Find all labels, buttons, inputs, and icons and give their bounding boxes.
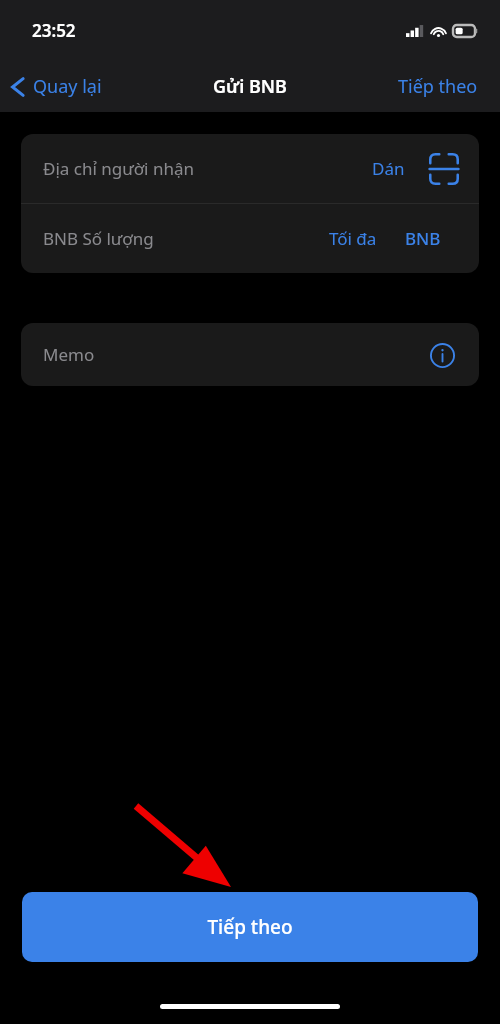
button[interactable]: Scan QR code bbox=[427, 152, 461, 186]
button[interactable]: Tiếp theo bbox=[376, 66, 500, 107]
button[interactable]: Quay lại bbox=[0, 68, 114, 105]
staticText: Gửi BNB bbox=[213, 74, 287, 99]
button[interactable]: Memo information bbox=[427, 340, 457, 370]
staticText: BNB Số lượng bbox=[43, 227, 323, 250]
button[interactable]: Tối đa bbox=[323, 221, 383, 256]
button[interactable]: BNB bbox=[401, 221, 445, 256]
button[interactable]: Tiếp theo bbox=[22, 892, 478, 962]
staticText: Địa chỉ người nhận bbox=[43, 157, 366, 180]
button[interactable]: Dán bbox=[366, 151, 411, 186]
staticText: Tiếp theo bbox=[207, 914, 293, 940]
staticText: Memo bbox=[43, 343, 427, 366]
button[interactable]: Memo bbox=[21, 323, 479, 386]
staticText: Quay lại bbox=[33, 74, 102, 99]
button[interactable]: Địa chỉ người nhận bbox=[21, 134, 479, 203]
button[interactable]: BNB Số lượng bbox=[21, 204, 479, 273]
staticText: 23:52 bbox=[32, 19, 76, 42]
